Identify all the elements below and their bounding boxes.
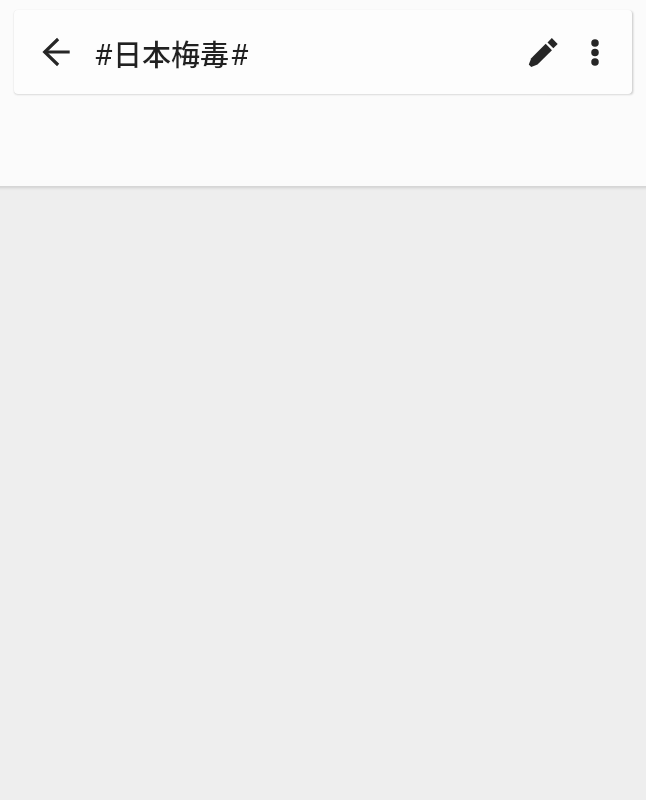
staticText: # xyxy=(94,37,113,72)
button[interactable]: Edit xyxy=(514,24,570,80)
staticText: # xyxy=(230,37,249,72)
staticText: 日本梅毒 xyxy=(113,32,230,74)
button[interactable]: More options xyxy=(570,24,620,80)
button[interactable]: Back xyxy=(14,10,632,94)
button[interactable]: Back xyxy=(28,24,84,80)
